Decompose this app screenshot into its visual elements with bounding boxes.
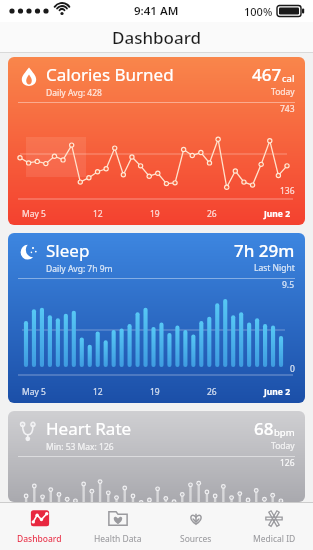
staticText: June 2 <box>264 386 291 398</box>
staticText: Dashboard <box>112 26 202 49</box>
staticText: 136 <box>280 185 295 197</box>
staticText: cal <box>282 72 295 85</box>
staticText: Today <box>271 86 295 98</box>
staticText: May 5 <box>22 208 46 220</box>
staticText: 467 <box>252 63 282 86</box>
staticText: Today <box>271 440 295 452</box>
staticText: Heart Rate <box>46 417 132 440</box>
staticText: Min: 53 Max: 126 <box>46 441 114 453</box>
staticText: 126 <box>280 457 295 469</box>
staticText: 743 <box>280 103 295 115</box>
staticText: 19 <box>150 386 160 398</box>
button[interactable]: Sources <box>157 503 235 550</box>
staticText: 9:41 AM <box>134 3 179 19</box>
button[interactable]: Calories Burned <box>8 57 305 225</box>
staticText: June 2 <box>264 208 291 220</box>
staticText: bpm <box>274 426 295 439</box>
staticText: 26 <box>207 208 217 220</box>
staticText: Medical ID <box>253 533 296 545</box>
staticText: Last Night <box>254 262 295 274</box>
staticText: Calories Burned <box>46 63 174 86</box>
staticText: 12 <box>93 386 103 398</box>
other: Sources <box>184 507 208 531</box>
other: Medical ID <box>262 507 286 531</box>
staticText: 7h 29m <box>234 239 295 262</box>
staticText: Daily Avg: 428 <box>46 87 102 99</box>
button[interactable]: Dashboard <box>0 503 79 550</box>
staticText: 26 <box>207 386 217 398</box>
other: Health Data <box>106 507 130 531</box>
button[interactable]: Heart Rate <box>8 411 305 502</box>
staticText: Health Data <box>94 533 142 545</box>
staticText: 0 <box>290 363 295 375</box>
staticText: 68 <box>254 417 274 440</box>
staticText: Sleep <box>46 239 90 262</box>
staticText: 9.5 <box>282 279 295 291</box>
staticText: May 5 <box>22 386 46 398</box>
staticText: Dashboard <box>17 533 62 545</box>
staticText: Daily Avg: 7h 9m <box>46 263 113 275</box>
staticText: Sources <box>180 533 212 545</box>
staticText: 19 <box>150 208 160 220</box>
other: Dashboard <box>28 507 52 531</box>
button[interactable]: Sleep <box>8 233 305 403</box>
staticText: 12 <box>93 208 103 220</box>
button[interactable]: Health Data <box>79 503 157 550</box>
staticText: 100% <box>244 4 273 19</box>
button[interactable]: Medical ID <box>235 503 313 550</box>
